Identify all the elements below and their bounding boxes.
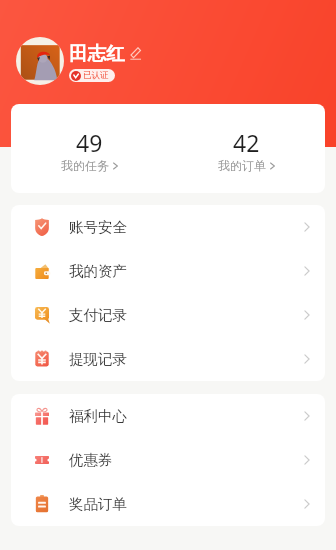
staticText: 我的任务: [61, 158, 109, 173]
button[interactable]: 福利中心: [11, 394, 325, 438]
staticText: 已认证: [83, 70, 109, 81]
button[interactable]: Edit name: [130, 47, 141, 60]
staticText: 田志红: [69, 42, 125, 65]
staticText: 福利中心: [69, 407, 127, 425]
button[interactable]: 49: [11, 104, 168, 193]
staticText: 优惠券: [69, 451, 113, 469]
staticText: 42: [233, 127, 260, 158]
staticText: 我的订单: [218, 158, 266, 173]
button[interactable]: 奖品订单: [11, 482, 325, 526]
button[interactable]: 42: [168, 104, 325, 193]
button[interactable]: 账号安全: [11, 205, 325, 249]
staticText: 支付记录: [69, 306, 127, 324]
staticText: 49: [76, 127, 103, 158]
button[interactable]: Profile photo: [16, 37, 64, 85]
staticText: 账号安全: [69, 218, 127, 236]
staticText: 我的资产: [69, 262, 127, 280]
staticText: 提现记录: [69, 350, 127, 368]
button[interactable]: 已认证: [69, 69, 115, 82]
button[interactable]: 支付记录: [11, 293, 325, 337]
button[interactable]: 提现记录: [11, 337, 325, 381]
staticText: 奖品订单: [69, 495, 127, 513]
button[interactable]: 我的资产: [11, 249, 325, 293]
button[interactable]: 优惠券: [11, 438, 325, 482]
